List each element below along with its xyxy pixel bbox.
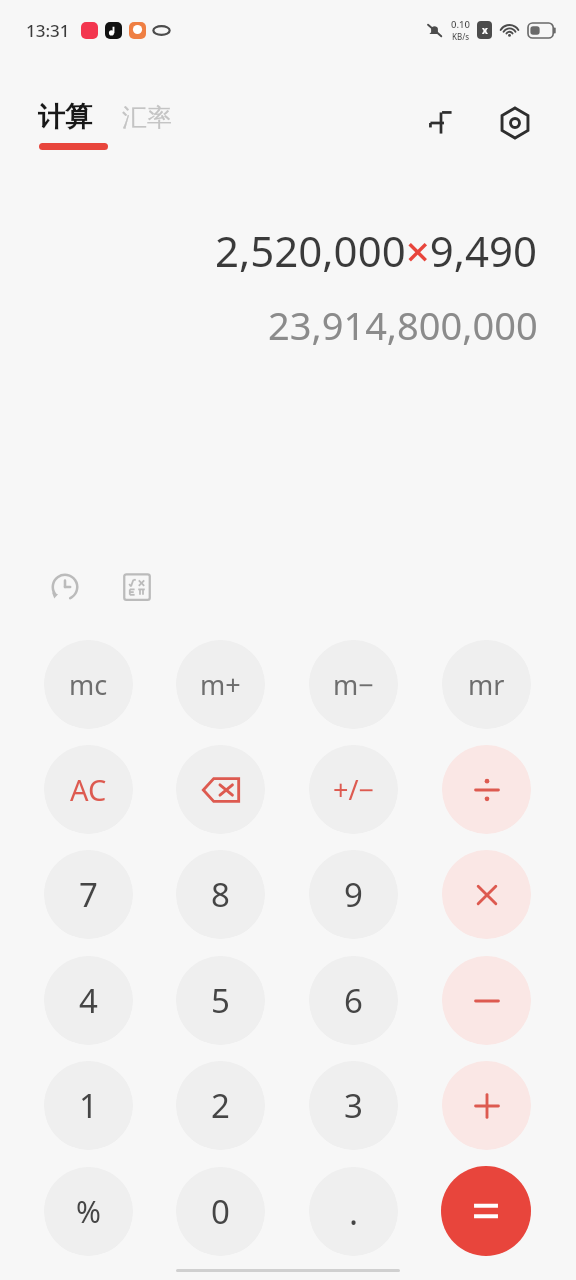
button[interactable]: 5 — [176, 956, 265, 1045]
button[interactable]: Divide — [442, 745, 531, 834]
staticText: 3 — [344, 1083, 363, 1128]
button[interactable]: 9 — [309, 850, 398, 939]
staticText: AC — [70, 770, 107, 809]
staticText: m− — [333, 666, 374, 703]
staticText: . — [349, 1189, 359, 1235]
staticText: 1 — [79, 1083, 98, 1128]
staticText: +/− — [333, 771, 374, 808]
button[interactable]: Add — [442, 1061, 531, 1150]
button[interactable]: 1 — [44, 1061, 133, 1150]
button[interactable]: 7 — [44, 850, 133, 939]
button[interactable]: Subtract — [442, 956, 531, 1045]
button[interactable]: Multiply — [442, 850, 531, 939]
button[interactable]: AC — [44, 745, 133, 834]
staticText: x — [482, 23, 488, 37]
button[interactable]: 计算 — [38, 100, 92, 134]
staticText: 6 — [344, 978, 363, 1023]
staticText: m+ — [200, 666, 241, 703]
staticText: 0 — [211, 1189, 230, 1234]
button[interactable]: 4 — [44, 956, 133, 1045]
staticText: 4 — [79, 978, 98, 1023]
button[interactable]: 0 — [176, 1167, 265, 1256]
staticText: 2,520,000×9,490 — [215, 222, 538, 279]
button[interactable]: 汇率 — [122, 102, 172, 134]
staticText: 9 — [344, 872, 363, 917]
button[interactable]: 3 — [309, 1061, 398, 1150]
staticText: 汇率 — [122, 102, 172, 133]
button[interactable]: m− — [309, 640, 398, 729]
button[interactable]: Scientific mode — [112, 562, 162, 612]
button[interactable]: m+ — [176, 640, 265, 729]
staticText: 13:31 — [26, 19, 70, 42]
staticText: mc — [69, 666, 108, 703]
button[interactable]: Equals — [441, 1166, 531, 1256]
button[interactable]: 2 — [176, 1061, 265, 1150]
button[interactable]: mr — [442, 640, 531, 729]
button[interactable]: . — [309, 1167, 398, 1256]
button[interactable]: Backspace — [176, 745, 265, 834]
button[interactable]: Add — [416, 98, 466, 148]
button[interactable]: Settings — [490, 98, 540, 148]
staticText: 计算 — [38, 100, 92, 134]
staticText: 7 — [79, 872, 98, 917]
staticText: KB/s — [452, 31, 470, 42]
staticText: 5 — [211, 978, 230, 1023]
button[interactable]: History — [40, 562, 90, 612]
button[interactable]: +/− — [309, 745, 398, 834]
staticText: 8 — [211, 872, 230, 917]
button[interactable]: % — [44, 1167, 133, 1256]
staticText: mr — [468, 666, 505, 703]
button[interactable]: mc — [44, 640, 133, 729]
staticText: 23,914,800,000 — [268, 299, 538, 351]
staticText: 0.10 — [451, 18, 470, 31]
button[interactable]: 8 — [176, 850, 265, 939]
button[interactable]: 6 — [309, 956, 398, 1045]
staticText: 2 — [211, 1083, 230, 1128]
staticText: % — [76, 1191, 101, 1232]
